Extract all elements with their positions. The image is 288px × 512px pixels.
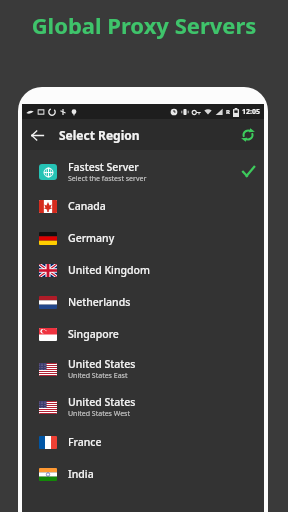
button[interactable]: Singapore bbox=[22, 318, 264, 350]
button[interactable]: Refresh bbox=[233, 120, 263, 150]
button[interactable]: India bbox=[22, 458, 264, 490]
button[interactable]: Germany bbox=[22, 222, 264, 254]
staticText: Global Proxy Servers bbox=[0, 10, 288, 40]
staticText: Select the fastest server bbox=[68, 174, 147, 184]
button[interactable]: United States bbox=[22, 350, 264, 388]
button[interactable]: Canada bbox=[22, 190, 264, 222]
staticText: Germany bbox=[68, 231, 115, 245]
staticText: 12:05 bbox=[242, 107, 260, 117]
staticText: R bbox=[226, 108, 230, 116]
staticText: United States East bbox=[68, 371, 128, 381]
button[interactable]: France bbox=[22, 426, 264, 458]
staticText: United States bbox=[68, 395, 136, 409]
staticText: United Kingdom bbox=[68, 263, 150, 277]
staticText: United States West bbox=[68, 409, 130, 419]
staticText: United States bbox=[68, 357, 136, 371]
button[interactable]: United States bbox=[22, 388, 264, 426]
staticText: Canada bbox=[68, 199, 106, 213]
staticText: Fastest Server bbox=[68, 160, 139, 174]
staticText: India bbox=[68, 467, 94, 481]
staticText: Select Region bbox=[59, 127, 140, 143]
staticText: Netherlands bbox=[68, 295, 131, 309]
staticText: Singapore bbox=[68, 327, 119, 341]
staticText: France bbox=[68, 435, 102, 449]
button[interactable]: United Kingdom bbox=[22, 254, 264, 286]
button[interactable]: Back bbox=[22, 120, 52, 150]
button[interactable]: Fastest Server bbox=[22, 153, 264, 190]
button[interactable]: Netherlands bbox=[22, 286, 264, 318]
